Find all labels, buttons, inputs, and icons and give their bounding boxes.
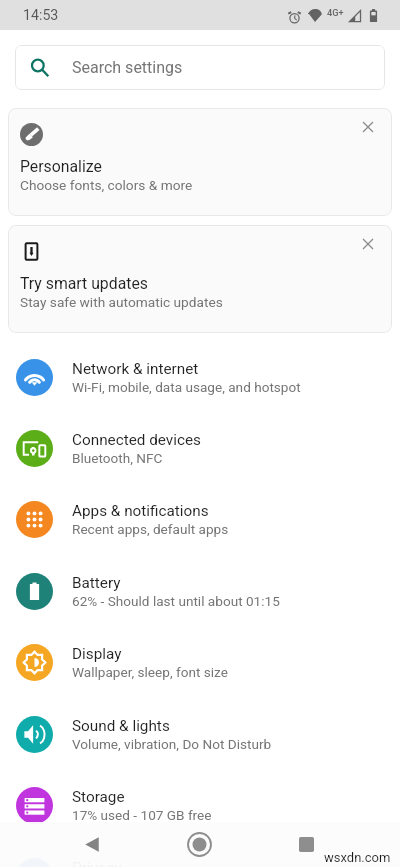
button[interactable]: Privacy: [0, 841, 400, 867]
staticText: Search settings: [72, 58, 183, 77]
button[interactable]: Battery: [0, 556, 400, 627]
staticText: Stay safe with automatic updates: [20, 294, 223, 310]
button[interactable]: Dismiss: [356, 115, 380, 139]
staticText: 17% used - 107 GB free: [72, 807, 212, 823]
button[interactable]: Search settings: [15, 45, 385, 90]
staticText: 14:53: [23, 7, 59, 24]
staticText: Privacy: [72, 859, 122, 867]
button[interactable]: Storage: [0, 770, 400, 841]
staticText: Personalize: [20, 157, 102, 176]
button[interactable]: Home: [175, 822, 223, 867]
button[interactable]: Back: [68, 822, 116, 867]
button[interactable]: Network & internet: [0, 342, 400, 413]
staticText: Bluetooth, NFC: [72, 450, 163, 466]
staticText: 4G+: [327, 7, 344, 18]
button[interactable]: Sound & lights: [0, 699, 400, 770]
staticText: Wi-Fi, mobile, data usage, and hotspot: [72, 379, 301, 395]
staticText: Sound & lights: [72, 717, 170, 735]
button[interactable]: Apps & notifications: [0, 484, 400, 555]
staticText: 62% - Should last until about 01:15: [72, 593, 280, 609]
button[interactable]: Personalize: [8, 108, 392, 216]
staticText: Display: [72, 645, 122, 663]
button[interactable]: Display: [0, 627, 400, 698]
button[interactable]: Recent apps: [282, 822, 330, 867]
staticText: Connected devices: [72, 431, 202, 449]
staticText: Apps & notifications: [72, 502, 209, 520]
staticText: Storage: [72, 788, 125, 806]
staticText: Choose fonts, colors & more: [20, 177, 193, 193]
staticText: Wallpaper, sleep, font size: [72, 664, 228, 680]
button[interactable]: Dismiss: [356, 232, 380, 256]
button[interactable]: Try smart updates: [8, 225, 392, 333]
button[interactable]: Connected devices: [0, 413, 400, 484]
staticText: Battery: [72, 574, 121, 592]
staticText: Volume, vibration, Do Not Disturb: [72, 736, 272, 752]
staticText: Recent apps, default apps: [72, 521, 229, 537]
staticText: Try smart updates: [20, 274, 148, 293]
staticText: Network & internet: [72, 360, 199, 378]
staticText: wsxdn.com: [324, 850, 391, 865]
